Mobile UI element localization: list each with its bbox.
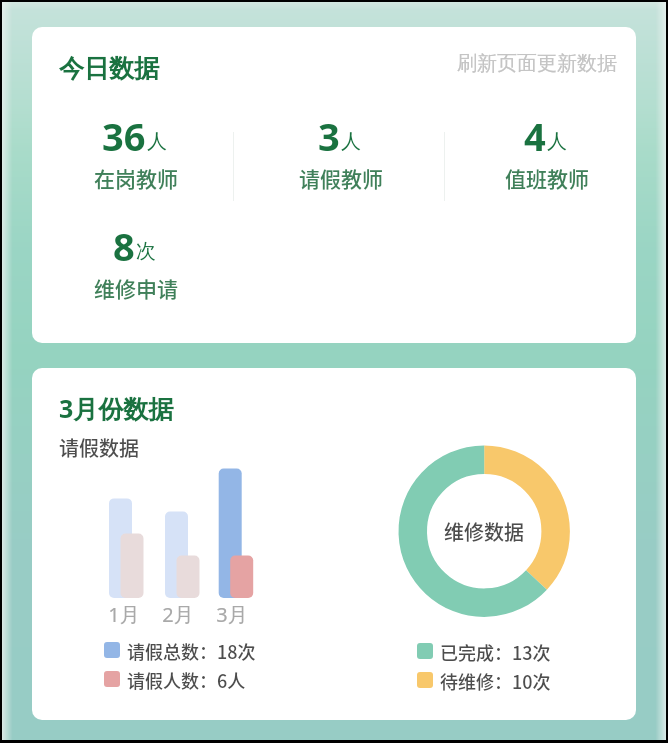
staticText: 维修数据 bbox=[444, 517, 524, 546]
button[interactable]: 4 bbox=[457, 110, 636, 193]
staticText: 待维修：10次 bbox=[440, 668, 551, 692]
staticText: 在岗教师 bbox=[94, 163, 178, 193]
button[interactable]: 请假总数：18次 bbox=[104, 638, 233, 662]
staticText: 人 bbox=[547, 129, 567, 154]
staticText: 维修申请 bbox=[94, 273, 178, 303]
staticText: 3月份数据 bbox=[59, 391, 174, 425]
staticText: 4 bbox=[524, 110, 546, 162]
staticText: 请假人数：6人 bbox=[127, 667, 246, 691]
staticText: 值班教师 bbox=[505, 163, 589, 193]
staticText: 2月 bbox=[138, 601, 218, 628]
button[interactable]: 刷新页面更新数据 bbox=[457, 51, 617, 76]
staticText: 1月 bbox=[84, 601, 164, 628]
button[interactable]: 3 bbox=[251, 110, 431, 193]
button[interactable]: 8 bbox=[46, 220, 226, 303]
staticText: 已完成：13次 bbox=[440, 639, 551, 663]
staticText: 人 bbox=[341, 129, 361, 154]
staticText: 3 bbox=[318, 110, 340, 162]
button[interactable]: 待维修：10次 bbox=[417, 668, 528, 692]
button[interactable]: 维修数据 饼图 bbox=[384, 431, 584, 631]
staticText: 今日数据 bbox=[59, 53, 159, 84]
button[interactable]: 36 bbox=[46, 110, 226, 193]
staticText: 3月 bbox=[192, 601, 272, 628]
staticText: 请假总数：18次 bbox=[127, 638, 256, 662]
staticText: 刷新页面更新数据 bbox=[457, 51, 617, 76]
staticText: 人 bbox=[147, 129, 167, 154]
staticText: 次 bbox=[136, 239, 156, 264]
staticText: 请假数据 bbox=[59, 433, 139, 462]
button[interactable]: 已完成：13次 bbox=[417, 639, 528, 663]
button[interactable]: 请假人数：6人 bbox=[104, 667, 223, 691]
staticText: 请假教师 bbox=[299, 163, 383, 193]
staticText: 8 bbox=[113, 220, 135, 272]
staticText: 36 bbox=[102, 110, 146, 162]
